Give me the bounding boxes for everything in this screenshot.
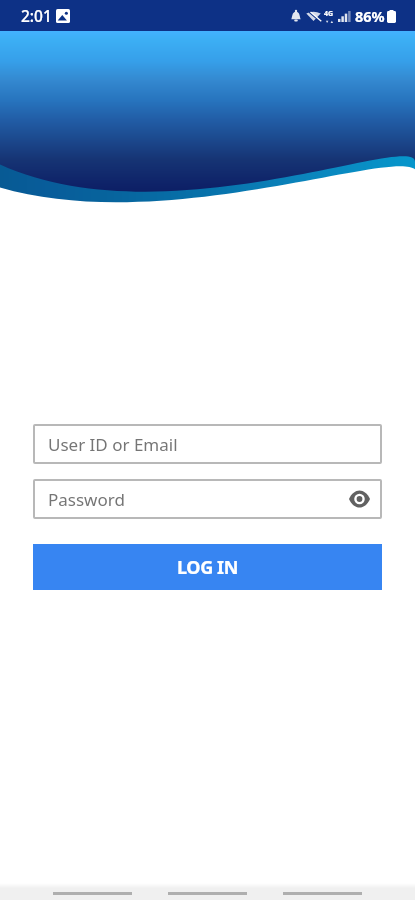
button[interactable]: Password bbox=[33, 479, 382, 519]
staticText: User ID or Email bbox=[48, 433, 178, 456]
staticText: 2:01 bbox=[21, 5, 52, 26]
button[interactable]: User ID or Email bbox=[33, 424, 382, 464]
staticText: Password bbox=[48, 488, 125, 511]
staticText: LOG IN bbox=[177, 555, 238, 580]
button[interactable]: LOG IN bbox=[33, 544, 382, 590]
button[interactable]: Show password bbox=[349, 491, 370, 507]
staticText: 86% bbox=[355, 6, 385, 26]
staticText: 4G bbox=[324, 9, 334, 19]
